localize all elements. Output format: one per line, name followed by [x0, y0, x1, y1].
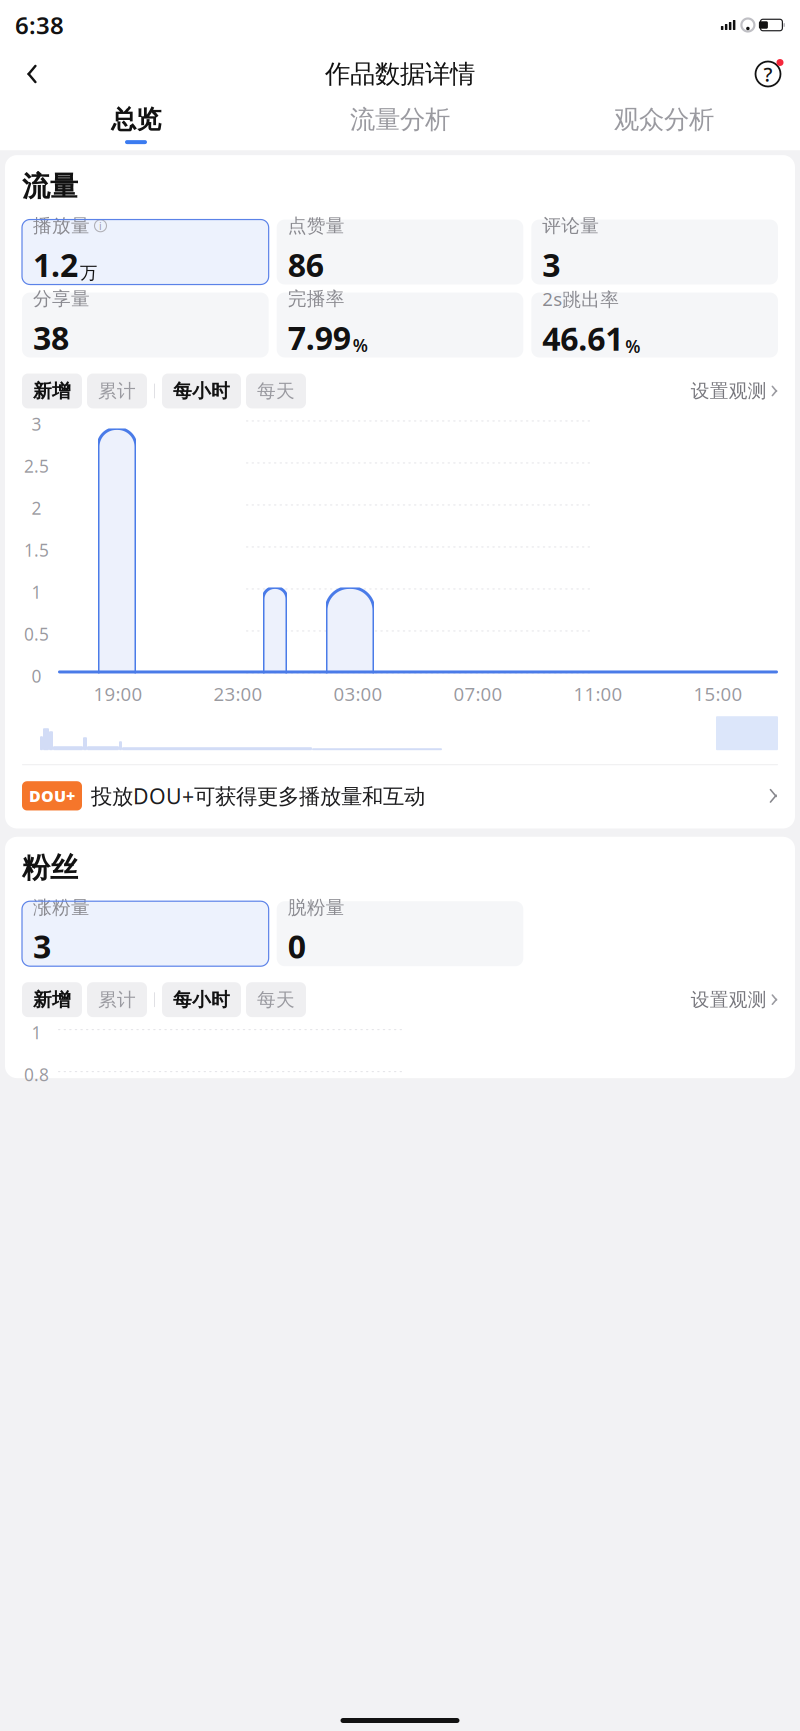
button[interactable]: 2s跳出率: [531, 292, 778, 357]
staticText: 完播率: [288, 287, 345, 310]
button[interactable]: Back: [12, 54, 52, 94]
staticText: 3: [542, 243, 560, 286]
staticText: 脱粉量: [288, 896, 345, 919]
button[interactable]: 累计: [87, 373, 147, 408]
staticText: 累计: [98, 988, 136, 1011]
staticText: 评论量: [542, 214, 599, 237]
button[interactable]: 总览: [4, 98, 268, 150]
staticText: 07:00: [453, 681, 502, 706]
staticText: DOU+: [29, 785, 75, 806]
button[interactable]: 累计: [87, 982, 147, 1017]
staticText: 播放量: [33, 214, 90, 237]
staticText: ?: [763, 61, 772, 87]
button[interactable]: 每小时: [162, 373, 241, 408]
staticText: %: [625, 335, 640, 358]
staticText: 0: [288, 925, 306, 967]
staticText: 2.5: [24, 454, 49, 477]
staticText: 03:00: [333, 681, 382, 706]
staticText: 观众分析: [614, 104, 714, 135]
staticText: 11:00: [573, 681, 622, 706]
button[interactable]: 新增: [22, 982, 82, 1017]
staticText: 设置观测: [691, 379, 767, 402]
staticText: 86: [288, 243, 324, 286]
staticText: 15:00: [693, 681, 742, 706]
staticText: 19:00: [93, 681, 142, 706]
button[interactable]: 设置观测: [691, 988, 778, 1011]
button[interactable]: 新增: [22, 373, 82, 408]
button[interactable]: 每天: [246, 982, 306, 1017]
staticText: 总览: [111, 104, 161, 135]
staticText: 1.2: [33, 243, 78, 286]
staticText: 新增: [33, 379, 71, 402]
staticText: 23:00: [213, 681, 262, 706]
button[interactable]: 观众分析: [532, 98, 796, 150]
button[interactable]: 每天: [246, 373, 306, 408]
staticText: 设置观测: [691, 988, 767, 1011]
staticText: 0.8: [24, 1063, 49, 1086]
staticText: 46.61: [542, 317, 623, 360]
button[interactable]: 分享量: [22, 292, 269, 357]
staticText: 粉丝: [22, 851, 78, 885]
staticText: 点赞量: [288, 214, 345, 237]
staticText: 万: [80, 262, 97, 284]
staticText: 新增: [33, 988, 71, 1011]
staticText: 1: [31, 580, 41, 603]
staticText: 每小时: [173, 988, 230, 1011]
button[interactable]: 设置观测: [691, 379, 778, 402]
staticText: 分享量: [33, 287, 90, 310]
button[interactable]: 每小时: [162, 982, 241, 1017]
staticText: 0: [31, 664, 41, 687]
staticText: 1: [31, 1021, 41, 1044]
staticText: %: [353, 334, 368, 357]
staticText: 每小时: [173, 379, 230, 402]
staticText: 6:38: [15, 9, 64, 41]
staticText: 0.5: [24, 622, 49, 645]
button[interactable]: Help: [748, 54, 788, 94]
staticText: 1.5: [24, 538, 49, 561]
staticText: 2: [31, 496, 41, 519]
staticText: 每天: [257, 379, 295, 402]
button[interactable]: 脱粉量: [277, 901, 523, 966]
button[interactable]: 流量分析: [268, 98, 532, 150]
staticText: i: [99, 219, 102, 233]
button[interactable]: 播放量: [22, 219, 269, 284]
button[interactable]: DOU+: [22, 777, 778, 814]
staticText: 2s跳出率: [542, 286, 619, 311]
staticText: 流量分析: [350, 104, 450, 135]
button[interactable]: 点赞量: [277, 219, 523, 284]
button[interactable]: 涨粉量: [22, 901, 269, 966]
staticText: 涨粉量: [33, 896, 90, 919]
staticText: 38: [33, 316, 69, 359]
staticText: 3: [33, 925, 51, 967]
button[interactable]: 评论量: [531, 219, 778, 284]
staticText: 累计: [98, 379, 136, 402]
staticText: 每天: [257, 988, 295, 1011]
staticText: 流量: [22, 169, 78, 203]
staticText: 投放DOU+可获得更多播放量和互动: [91, 782, 425, 810]
staticText: 3: [31, 412, 41, 435]
staticText: 作品数据详情: [325, 58, 475, 89]
button[interactable]: 完播率: [277, 292, 523, 357]
staticText: 7.99: [288, 316, 351, 359]
